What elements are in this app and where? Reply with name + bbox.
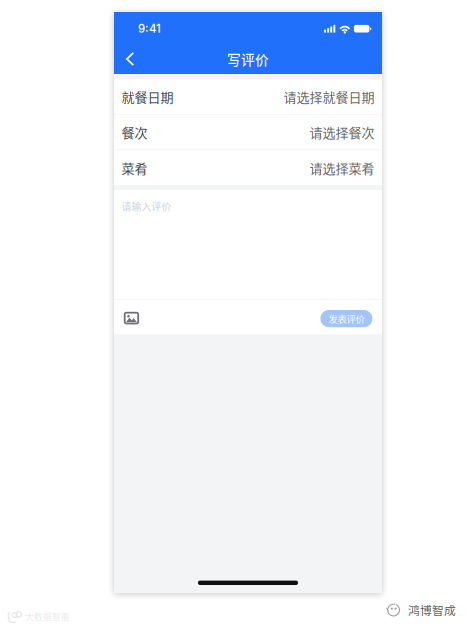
button[interactable]: Back	[114, 43, 142, 75]
staticText: 餐次	[121, 123, 147, 141]
button[interactable]: 菜肴	[114, 150, 382, 185]
staticText: 菜肴	[121, 158, 147, 177]
staticText: 写评价	[227, 49, 269, 69]
staticText: 鸿博智成	[408, 601, 456, 618]
staticText: 请选择就餐日期	[283, 87, 374, 106]
button[interactable]: 就餐日期	[114, 79, 382, 114]
staticText: 请输入评价	[121, 199, 171, 213]
staticText: 9:41	[138, 22, 161, 36]
button[interactable]: Add photo	[123, 300, 140, 334]
staticText: 发表评价	[328, 312, 364, 325]
staticText: 大数据智能	[25, 610, 70, 623]
staticText: 请选择餐次	[309, 123, 374, 141]
button[interactable]: 发表评价	[320, 307, 372, 327]
staticText: 就餐日期	[121, 87, 173, 106]
staticText: 请选择菜肴	[309, 158, 374, 177]
button[interactable]: 餐次	[114, 115, 382, 150]
